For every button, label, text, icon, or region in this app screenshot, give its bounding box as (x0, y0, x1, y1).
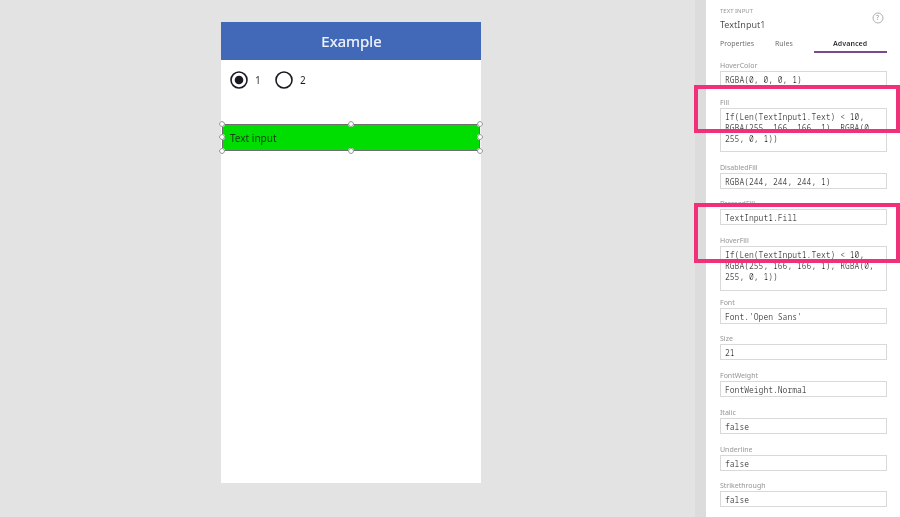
staticText: TEXT INPUT (720, 7, 754, 15)
staticText: Advanced (833, 39, 868, 49)
staticText: FontWeight.Normal (725, 384, 807, 395)
staticText: Fill (720, 98, 730, 108)
staticText: PressedFill (720, 199, 755, 209)
button[interactable]: RGBA(244, 244, 244, 1) (720, 173, 887, 189)
staticText: RGBA(244, 244, 244, 1) (725, 176, 831, 187)
staticText: Italic (720, 408, 736, 418)
button[interactable]: RGBA(0, 0, 0, 1) (720, 71, 887, 87)
staticText: 2 (300, 73, 306, 87)
button[interactable]: Example (221, 22, 481, 60)
staticText: Properties (720, 39, 754, 49)
staticText: false (725, 494, 749, 505)
button[interactable]: Text input (222, 124, 480, 151)
button[interactable]: false (720, 418, 887, 434)
staticText: false (725, 421, 749, 432)
staticText: RGBA(255, 166, 166, 1), RGBA(0, (725, 122, 874, 133)
staticText: Rules (775, 39, 793, 49)
button[interactable]: false (720, 455, 887, 471)
button[interactable]: 21 (720, 344, 887, 360)
staticText: ? (876, 13, 880, 23)
staticText: If(Len(TextInput1.Text) < 10, (725, 111, 865, 122)
staticText: HoverFill (720, 236, 749, 246)
button[interactable]: 1 (230, 71, 261, 89)
button[interactable]: TextInput1.Fill (720, 209, 887, 225)
staticText: false (725, 458, 749, 469)
staticText: 21 (725, 347, 735, 358)
button[interactable]: If(Len(TextInput1.Text) < 10, (720, 108, 887, 152)
staticText: Font.'Open Sans' (725, 311, 802, 322)
button[interactable]: If(Len(TextInput1.Text) < 10, (720, 246, 887, 291)
button[interactable]: FontWeight.Normal (720, 381, 887, 397)
staticText: TextInput1.Fill (725, 212, 797, 223)
button[interactable]: Font.'Open Sans' (720, 308, 887, 324)
staticText: Underline (720, 445, 753, 455)
button[interactable]: Rules (775, 39, 793, 49)
button[interactable]: false (720, 491, 887, 507)
staticText: 255, 0, 1)) (725, 271, 778, 282)
button[interactable]: Advanced (814, 39, 887, 53)
staticText: HoverColor (720, 61, 758, 71)
staticText: Example (321, 31, 382, 51)
staticText: RGBA(255, 166, 166, 1), RGBA(0, (725, 260, 874, 271)
staticText: TextInput1 (720, 18, 766, 30)
button[interactable]: Properties (720, 39, 754, 49)
staticText: RGBA(0, 0, 0, 1) (725, 74, 802, 85)
button[interactable]: 2 (275, 71, 306, 89)
staticText: Size (720, 334, 733, 344)
button[interactable]: Help (872, 12, 884, 24)
staticText: DisabledFill (720, 163, 758, 173)
staticText: 1 (255, 73, 261, 87)
staticText: If(Len(TextInput1.Text) < 10, (725, 249, 865, 260)
staticText: Font (720, 298, 735, 308)
staticText: Strikethrough (720, 481, 766, 491)
staticText: Text input (230, 131, 277, 145)
staticText: 255, 0, 1)) (725, 133, 778, 144)
staticText: FontWeight (720, 371, 759, 381)
